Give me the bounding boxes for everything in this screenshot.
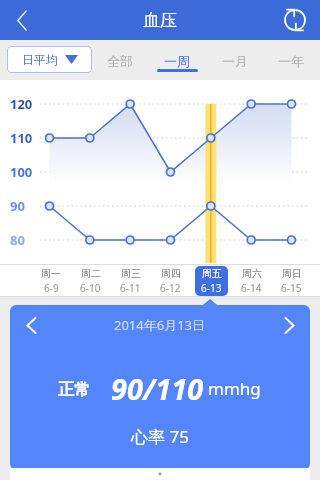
button[interactable]: 周三 xyxy=(112,266,148,296)
staticText: 周三 xyxy=(121,267,141,280)
button[interactable]: 一周 xyxy=(151,40,203,80)
button[interactable]: 一月 xyxy=(209,40,261,80)
staticText: 6-9 xyxy=(44,281,59,295)
staticText: 80 xyxy=(10,231,25,249)
button[interactable]: 一年 xyxy=(265,40,317,80)
button[interactable]: 周五 xyxy=(193,266,229,296)
staticText: 正常 xyxy=(58,380,90,400)
staticText: 6-13 xyxy=(201,281,222,295)
button[interactable]: Back xyxy=(0,0,44,40)
button[interactable]: 周一 xyxy=(32,266,68,296)
staticText: 6-11 xyxy=(120,281,141,295)
button[interactable]: 周四 xyxy=(152,266,188,296)
staticText: mmhg xyxy=(208,377,261,400)
button[interactable]: 周日 xyxy=(273,266,309,296)
button[interactable]: 周二 xyxy=(72,266,108,296)
button[interactable]: Refresh xyxy=(274,0,316,40)
staticText: 6-10 xyxy=(80,281,101,295)
staticText: 6-15 xyxy=(281,281,302,295)
staticText: 100 xyxy=(10,163,33,181)
staticText: 周一 xyxy=(41,267,61,280)
button[interactable]: 全部 xyxy=(94,40,146,80)
button[interactable]: Previous day xyxy=(14,308,48,342)
staticText: 120 xyxy=(10,95,33,113)
staticText: 6-12 xyxy=(160,281,181,295)
staticText: 2014年6月13日 xyxy=(114,316,206,334)
button[interactable]: 周六 xyxy=(233,266,269,296)
staticText: 一月 xyxy=(222,53,248,69)
staticText: 周五 xyxy=(202,267,222,280)
staticText: 一年 xyxy=(278,53,304,69)
staticText: 日平均 xyxy=(22,52,58,67)
staticText: 6-14 xyxy=(241,281,262,295)
button[interactable]: Next day xyxy=(272,308,306,342)
staticText: 一周 xyxy=(164,53,190,69)
staticText: 周六 xyxy=(242,267,262,280)
staticText: 心率 75 xyxy=(131,425,189,448)
staticText: 周二 xyxy=(81,267,101,280)
staticText: 周四 xyxy=(161,267,181,280)
staticText: 血压 xyxy=(143,10,177,31)
staticText: 90/110 xyxy=(111,369,204,408)
button[interactable]: 日平均 xyxy=(7,46,92,73)
staticText: 全部 xyxy=(107,53,133,69)
staticText: 110 xyxy=(10,129,33,147)
staticText: 周日 xyxy=(282,267,302,280)
staticText: 90 xyxy=(10,197,25,215)
